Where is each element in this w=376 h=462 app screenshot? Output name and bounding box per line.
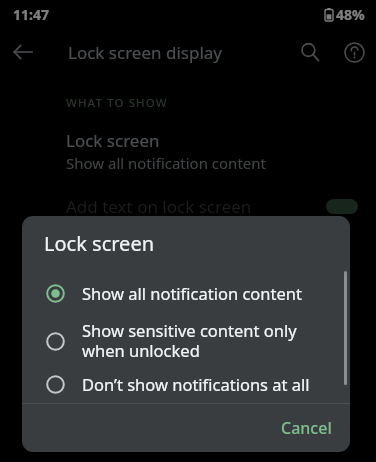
button[interactable]: Cancel <box>271 411 342 445</box>
staticText: Don’t show notifications at all <box>82 373 338 395</box>
button[interactable]: Add text on lock screen <box>0 195 376 218</box>
staticText: WHAT TO SHOW <box>66 95 168 111</box>
button[interactable]: Lock screen <box>0 129 376 173</box>
staticText: Lock screen <box>44 230 155 257</box>
button[interactable]: Back <box>0 29 46 75</box>
staticText: Cancel <box>281 417 332 439</box>
staticText: Add text on lock screen <box>66 195 252 218</box>
button[interactable]: Show all notification content <box>22 270 350 316</box>
button[interactable]: Show sensitive content only when unlocke… <box>22 316 350 365</box>
button[interactable]: Search <box>288 30 332 74</box>
staticText: Show all notification content <box>66 153 266 173</box>
staticText: 11:47 <box>13 5 49 24</box>
staticText: Lock screen <box>66 129 160 152</box>
staticText: Show sensitive content only when unlocke… <box>82 319 338 362</box>
button[interactable]: Help <box>332 30 376 74</box>
staticText: Lock screen display <box>68 41 222 64</box>
button[interactable]: Don’t show notifications at all <box>22 365 350 403</box>
staticText: Show all notification content <box>82 282 338 304</box>
staticText: 48% <box>336 5 365 24</box>
